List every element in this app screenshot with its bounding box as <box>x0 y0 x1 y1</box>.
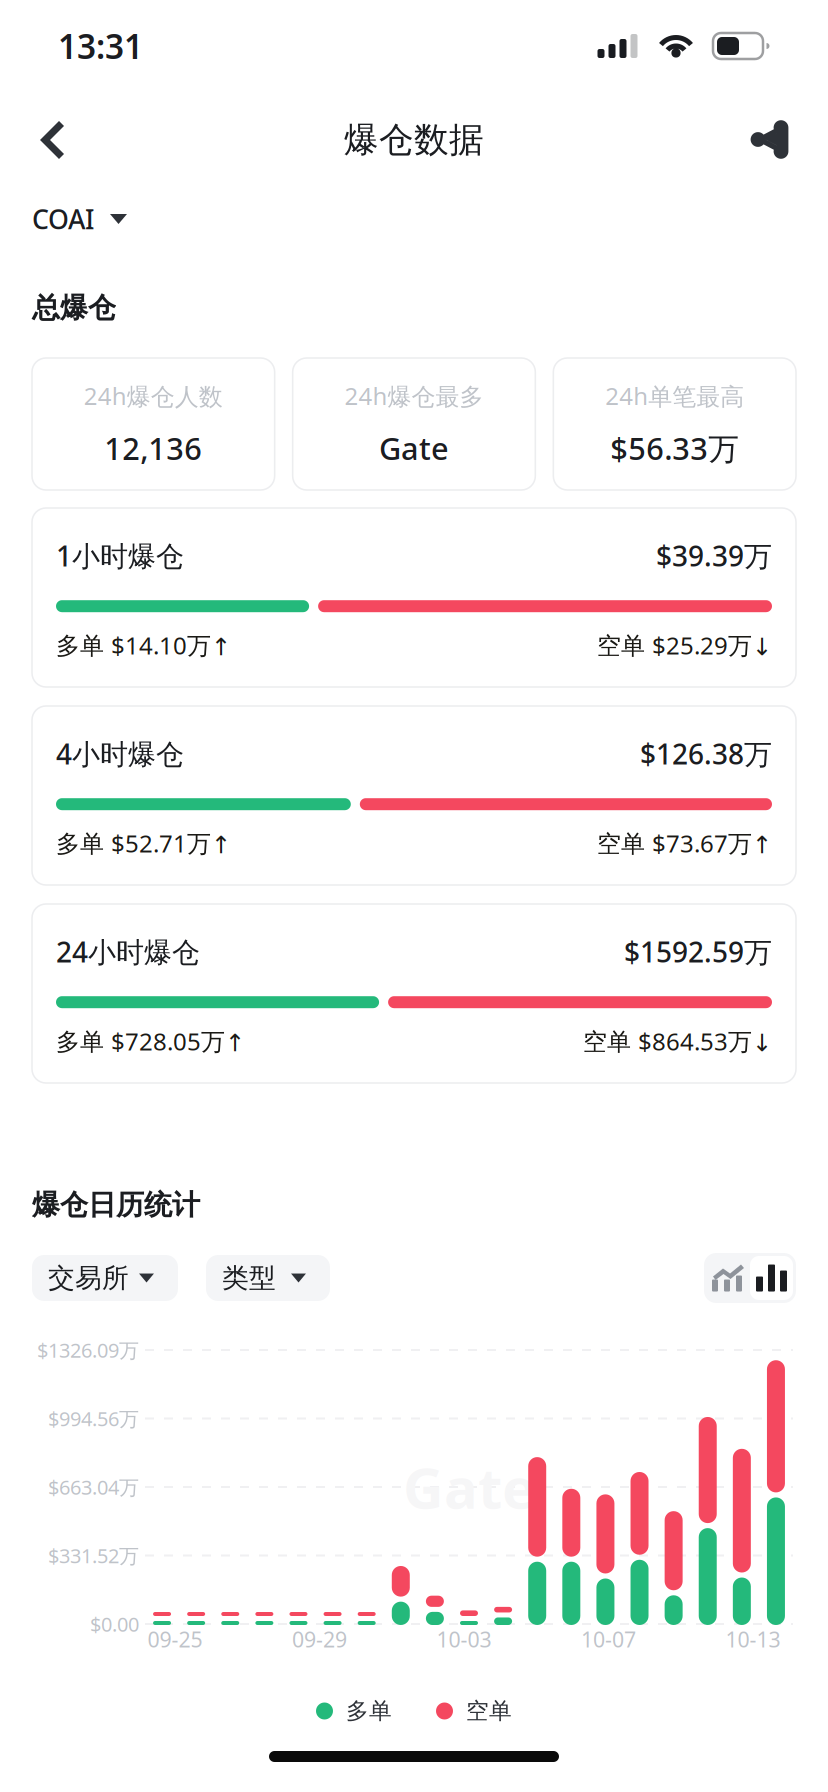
staticText: 空单 $25.29万↓ <box>597 629 772 661</box>
staticText: Gate <box>379 428 449 468</box>
staticText: $663.04万 <box>48 1474 139 1500</box>
button[interactable]: 类型 <box>206 1255 330 1301</box>
staticText: 4小时爆仓 <box>56 735 184 772</box>
staticText: 12,136 <box>104 428 202 468</box>
staticText: $1326.09万 <box>37 1337 139 1363</box>
staticText: 交易所 <box>48 1262 129 1294</box>
staticText: 类型 <box>222 1262 276 1294</box>
staticText: $126.38万 <box>640 735 772 772</box>
button[interactable]: COAI <box>0 188 159 250</box>
staticText: $994.56万 <box>48 1405 139 1432</box>
staticText: 24h爆仓人数 <box>84 380 223 412</box>
staticText: 多单 <box>346 1697 392 1725</box>
button[interactable]: 交易所 <box>32 1255 178 1301</box>
staticText: 13:31 <box>58 24 143 68</box>
button[interactable]: Share <box>728 97 812 183</box>
staticText: 24h爆仓最多 <box>344 380 483 412</box>
staticText: $331.52万 <box>48 1542 139 1569</box>
staticText: 09-29 <box>292 1625 347 1653</box>
staticText: $1592.59万 <box>624 933 772 970</box>
staticText: 1小时爆仓 <box>56 537 184 574</box>
staticText: 10-13 <box>725 1625 780 1653</box>
staticText: 多单 $728.05万↑ <box>56 1025 245 1057</box>
staticText: $0.00 <box>90 1611 139 1637</box>
button[interactable]: Back <box>16 96 88 184</box>
staticText: 10-07 <box>581 1625 636 1653</box>
staticText: 09-25 <box>147 1625 202 1653</box>
staticText: $56.33万 <box>610 428 739 468</box>
staticText: Gate <box>403 1450 535 1524</box>
staticText: 空单 $73.67万↑ <box>597 827 772 859</box>
staticText: 爆仓日历统计 <box>32 1188 200 1222</box>
staticText: 空单 $864.53万↓ <box>583 1025 772 1057</box>
staticText: 爆仓数据 <box>344 119 484 161</box>
button[interactable]: Line chart <box>707 1256 750 1300</box>
staticText: 多单 $52.71万↑ <box>56 827 231 859</box>
staticText: 空单 <box>466 1697 512 1725</box>
staticText: 总爆仓 <box>32 291 116 325</box>
staticText: 多单 $14.10万↑ <box>56 629 231 661</box>
staticText: 24小时爆仓 <box>56 933 200 970</box>
staticText: 24h单笔最高 <box>605 380 744 412</box>
staticText: COAI <box>32 201 94 237</box>
staticText: $39.39万 <box>656 537 772 574</box>
button[interactable]: Bar chart <box>750 1256 793 1300</box>
staticText: 10-03 <box>436 1625 491 1653</box>
